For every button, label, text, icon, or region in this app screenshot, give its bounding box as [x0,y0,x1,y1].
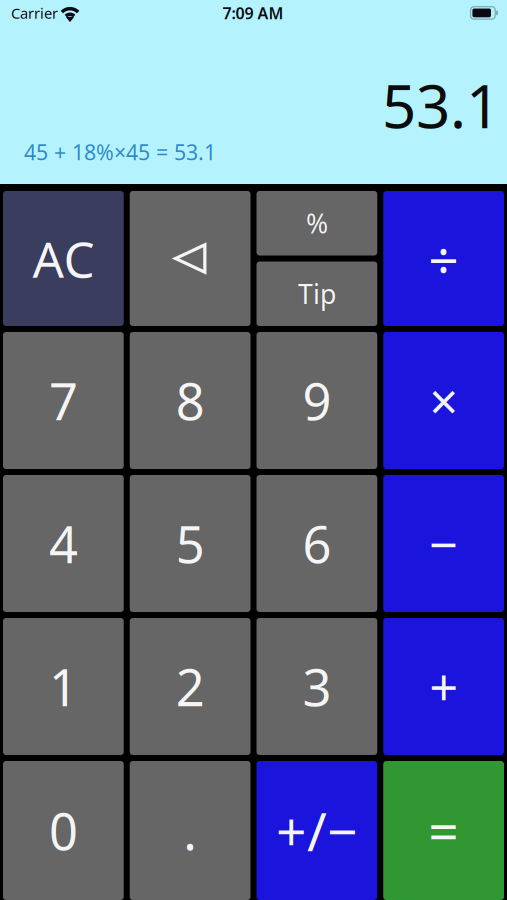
staticText: 7:09 AM [222,2,283,24]
button[interactable]: 3 [256,618,377,755]
staticText: × [429,367,458,434]
button[interactable]: AC [3,191,124,326]
button[interactable]: +/− [256,761,377,900]
button[interactable]: Backspace [130,191,251,326]
button[interactable]: 2 [130,618,251,755]
staticText: 4 [49,510,78,577]
staticText: Carrier [11,3,58,23]
staticText: 2 [176,653,205,720]
staticText: 53.1 [382,65,500,145]
button[interactable]: ÷ [383,191,504,326]
staticText: +/− [276,795,358,866]
staticText: − [429,510,458,577]
staticText: Tip [298,276,336,311]
staticText: 45 + 18%×45 = 53.1 [24,138,216,166]
staticText: = [428,795,459,866]
staticText: 9 [302,367,331,434]
button[interactable]: + [383,618,504,755]
button[interactable]: 8 [130,332,251,469]
button[interactable]: × [383,332,504,469]
button[interactable]: = [383,761,504,900]
button[interactable]: % [256,191,377,255]
staticText: AC [32,226,94,291]
staticText: ÷ [428,223,459,294]
button[interactable]: 0 [3,761,124,900]
staticText: 7 [49,367,78,434]
button[interactable]: 5 [130,475,251,612]
button[interactable]: . [130,761,251,900]
staticText: + [429,653,458,720]
button[interactable]: 7 [3,332,124,469]
staticText: 8 [176,367,205,434]
staticText: 6 [302,510,331,577]
staticText: 0 [49,797,78,864]
button[interactable]: 4 [3,475,124,612]
staticText: % [306,205,328,241]
staticText: 3 [302,653,331,720]
button[interactable]: 6 [256,475,377,612]
button[interactable]: − [383,475,504,612]
staticText: . [183,797,197,864]
button[interactable]: 9 [256,332,377,469]
staticText: 5 [176,510,205,577]
button[interactable]: 1 [3,618,124,755]
staticText: 1 [49,653,78,720]
button[interactable]: Tip [256,261,377,326]
